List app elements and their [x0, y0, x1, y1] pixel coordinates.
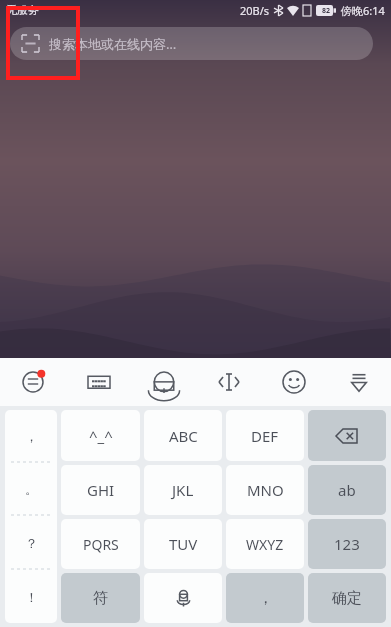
- button[interactable]: ab: [308, 465, 386, 515]
- button[interactable]: Scan: [10, 27, 373, 60]
- staticText: GHI: [87, 480, 115, 500]
- staticText: 。: [25, 481, 38, 497]
- staticText: ab: [338, 480, 356, 500]
- button[interactable]: Backspace: [308, 410, 386, 461]
- button[interactable]: ，: [5, 410, 57, 462]
- staticText: 82: [322, 6, 331, 16]
- button[interactable]: MNO: [226, 465, 304, 515]
- button[interactable]: GHI: [61, 465, 140, 515]
- staticText: 确定: [332, 589, 362, 608]
- button[interactable]: ！: [5, 570, 57, 623]
- staticText: TUV: [169, 534, 198, 554]
- button[interactable]: ^_^: [61, 410, 140, 461]
- button[interactable]: Hide keyboard: [326, 358, 391, 406]
- staticText: ！: [25, 589, 38, 605]
- button[interactable]: PQRS: [61, 519, 140, 569]
- staticText: JKL: [172, 480, 194, 500]
- button[interactable]: DEF: [226, 410, 304, 461]
- button[interactable]: 。: [5, 463, 57, 515]
- button[interactable]: TUV: [144, 519, 222, 569]
- staticText: DEF: [251, 426, 279, 446]
- staticText: 无服务: [6, 3, 39, 17]
- button[interactable]: Emoji: [261, 358, 326, 406]
- button[interactable]: JKL: [144, 465, 222, 515]
- button[interactable]: 符: [61, 573, 140, 623]
- button[interactable]: Keyboard layout: [66, 358, 131, 406]
- button[interactable]: Voice input: [131, 358, 196, 406]
- button[interactable]: WXYZ: [226, 519, 304, 569]
- button[interactable]: ，: [226, 573, 304, 623]
- button[interactable]: ABC: [144, 410, 222, 461]
- button[interactable]: 123: [308, 519, 386, 569]
- staticText: 搜索本地或在线内容…: [49, 35, 177, 53]
- staticText: ABC: [169, 426, 198, 446]
- staticText: 20B/s: [240, 3, 270, 18]
- staticText: ，: [25, 428, 38, 444]
- other: Scan: [22, 35, 39, 52]
- staticText: ^_^: [89, 426, 113, 446]
- staticText: 123: [334, 534, 360, 554]
- staticText: MNO: [247, 480, 284, 500]
- staticText: ，: [258, 589, 273, 608]
- button[interactable]: Move cursor: [196, 358, 261, 406]
- button[interactable]: Input method: [0, 358, 66, 406]
- button[interactable]: Voice: [144, 573, 222, 623]
- staticText: ？: [25, 535, 38, 551]
- staticText: WXYZ: [246, 535, 284, 554]
- button[interactable]: 确定: [308, 573, 386, 623]
- staticText: 符: [93, 589, 108, 608]
- staticText: 傍晚6:14: [341, 3, 385, 18]
- staticText: PQRS: [83, 535, 119, 554]
- button[interactable]: ？: [5, 516, 57, 569]
